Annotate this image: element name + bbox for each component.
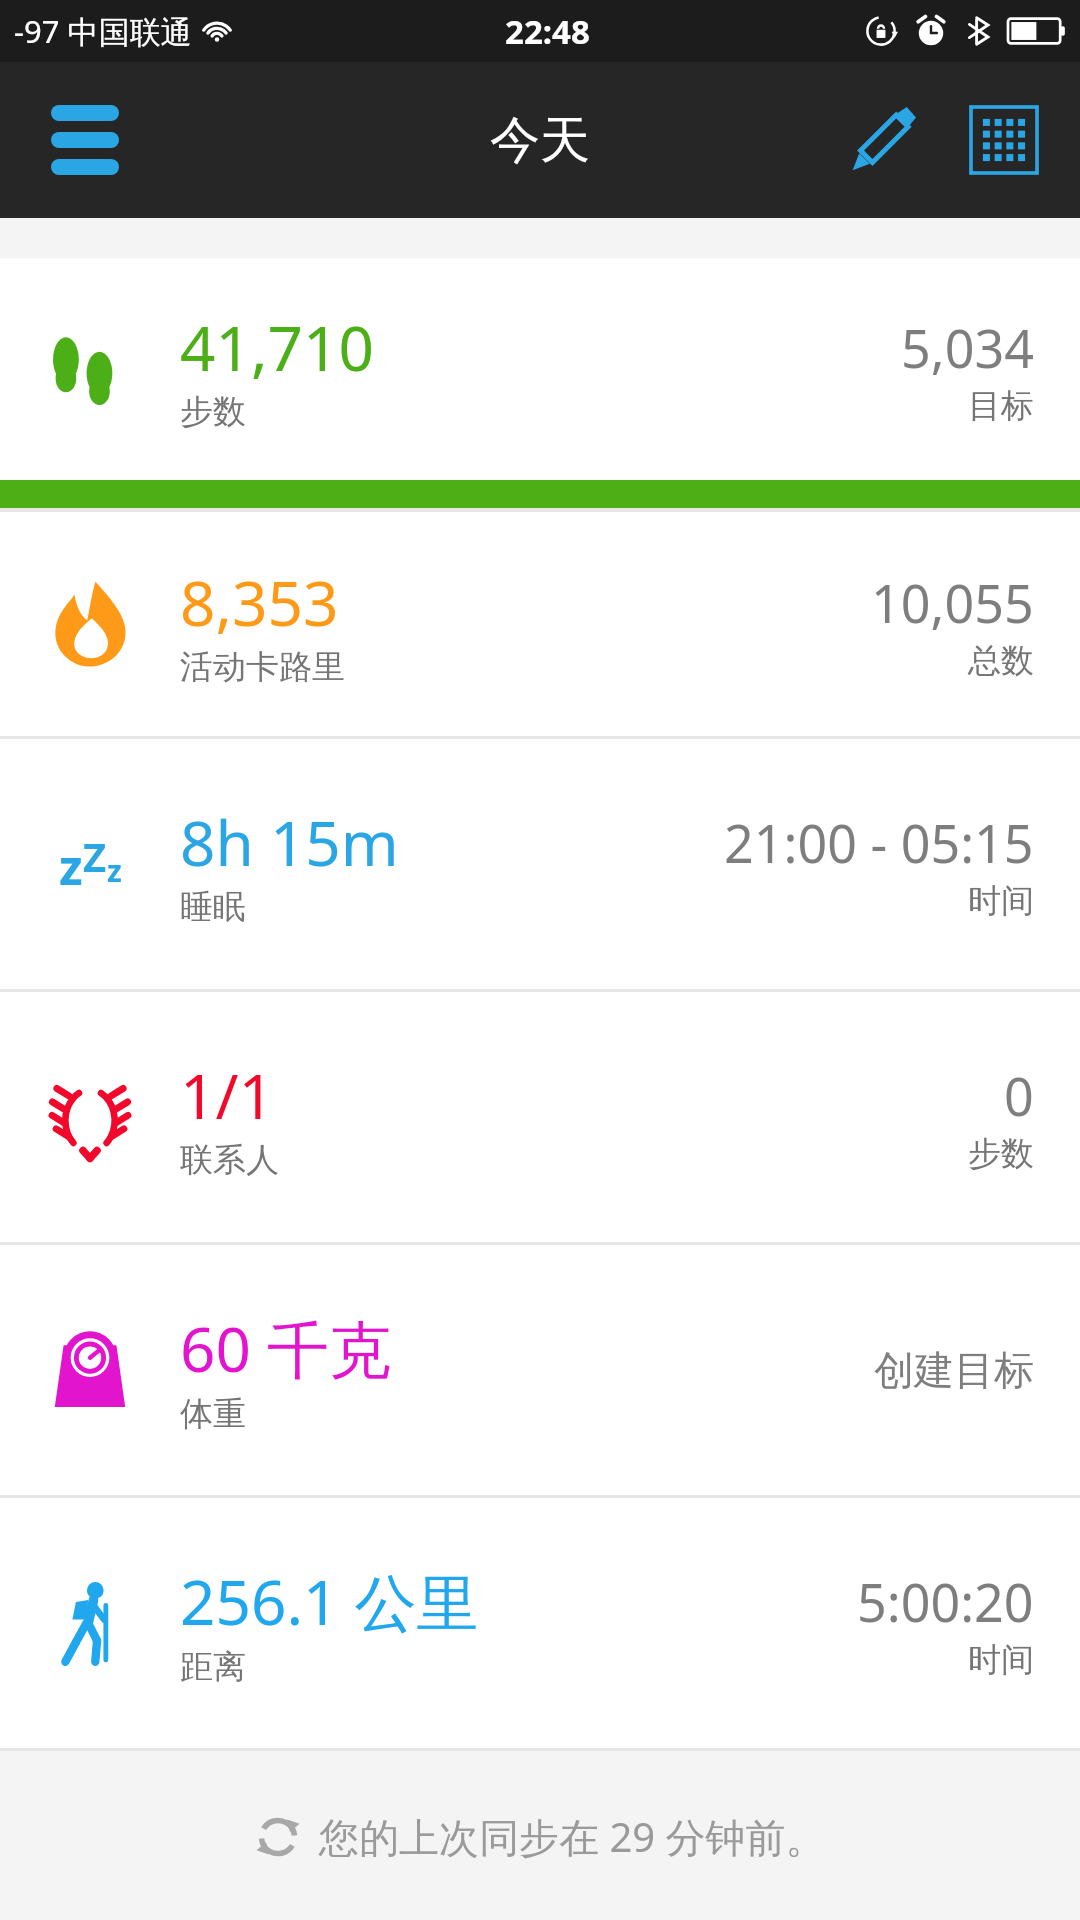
- staticText: 60 千克: [180, 1306, 392, 1391]
- staticText: 8h 15m: [180, 800, 399, 884]
- staticText: 距离: [180, 1646, 246, 1688]
- staticText: 5:00:20: [857, 1566, 1034, 1637]
- button[interactable]: 菜单: [40, 95, 130, 185]
- staticText: Z: [83, 829, 107, 883]
- staticText: 今天: [490, 109, 590, 172]
- staticText: 步数: [968, 1133, 1034, 1175]
- staticText: 您的上次同步在 29 分钟前。: [319, 1809, 826, 1864]
- staticText: 21:00 - 05:15: [724, 807, 1034, 878]
- staticText: 联系人: [180, 1139, 279, 1181]
- staticText: 256.1 公里: [180, 1559, 479, 1644]
- staticText: 目标: [968, 385, 1034, 427]
- staticText: 41,710: [180, 305, 374, 389]
- button[interactable]: 您的上次同步在 29 分钟前。: [0, 1752, 1080, 1920]
- staticText: 8,353: [180, 560, 339, 644]
- staticText: z: [107, 850, 122, 891]
- staticText: z: [59, 834, 83, 899]
- staticText: -97 中国联通: [14, 10, 192, 52]
- staticText: 睡眠: [180, 886, 246, 928]
- staticText: 5,034: [901, 312, 1034, 383]
- staticText: 创建目标: [874, 1345, 1034, 1395]
- staticText: 0: [1004, 1060, 1034, 1131]
- staticText: 活动卡路里: [180, 646, 345, 688]
- staticText: 时间: [968, 1639, 1034, 1681]
- button[interactable]: 日历: [954, 90, 1054, 190]
- button[interactable]: 41,710: [0, 258, 1080, 480]
- button[interactable]: 8,353: [0, 512, 1080, 736]
- staticText: 10,055: [871, 567, 1034, 638]
- button[interactable]: 1/1: [0, 992, 1080, 1242]
- button[interactable]: 60 千克: [0, 1245, 1080, 1495]
- staticText: 22:48: [505, 9, 590, 54]
- staticText: 步数: [180, 391, 246, 433]
- staticText: 体重: [180, 1393, 246, 1435]
- button[interactable]: 编辑: [828, 85, 938, 195]
- staticText: 时间: [968, 880, 1034, 922]
- staticText: 总数: [968, 640, 1034, 682]
- staticText: 1/1: [180, 1053, 274, 1137]
- button[interactable]: 256.1 公里: [0, 1498, 1080, 1748]
- button[interactable]: z: [0, 739, 1080, 989]
